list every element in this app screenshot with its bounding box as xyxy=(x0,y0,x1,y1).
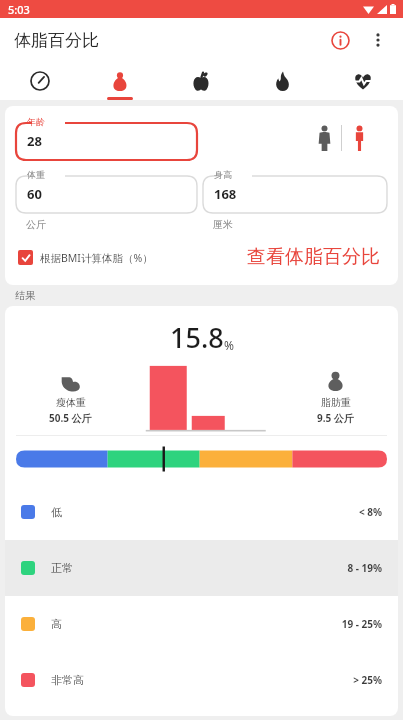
button[interactable]: 正常 xyxy=(5,540,398,596)
button[interactable]: 非常高 xyxy=(5,652,398,708)
staticText: 9.5 公斤 xyxy=(317,411,354,425)
staticText: 体脂百分比 xyxy=(14,30,99,51)
button[interactable]: Heart rate xyxy=(322,62,403,100)
staticText: 5:03 xyxy=(8,2,30,17)
button[interactable]: 查看体脂百分比 xyxy=(243,241,384,273)
staticText: > 25% xyxy=(353,673,382,687)
staticText: 非常高 xyxy=(51,673,84,687)
button[interactable]: 高 xyxy=(5,596,398,652)
button[interactable]: 低 xyxy=(5,484,398,540)
button[interactable]: Female xyxy=(307,121,341,155)
button[interactable]: Dashboard xyxy=(0,62,80,100)
staticText: 根据BMI计算体脂（%） xyxy=(40,251,153,265)
staticText: 体重 xyxy=(27,169,45,180)
staticText: 厘米 xyxy=(213,218,233,231)
button[interactable]: 年龄 xyxy=(16,116,197,160)
button[interactable]: Info xyxy=(321,21,359,59)
staticText: 50.5 公斤 xyxy=(49,411,92,425)
staticText: 身高 xyxy=(214,169,232,180)
button[interactable]: Body fat xyxy=(80,62,160,100)
staticText: 高 xyxy=(51,617,62,631)
staticText: 年龄 xyxy=(27,116,45,127)
staticText: 瘦体重 xyxy=(56,396,86,409)
staticText: 60 xyxy=(27,185,42,203)
staticText: 查看体脂百分比 xyxy=(247,245,380,269)
button[interactable]: Male xyxy=(342,121,376,155)
button[interactable]: 身高 xyxy=(203,169,387,213)
staticText: 公斤 xyxy=(26,218,46,231)
button[interactable]: 体重 xyxy=(16,169,197,213)
button[interactable]: More options xyxy=(359,21,397,59)
staticText: < 8% xyxy=(358,505,382,519)
staticText: 28 xyxy=(27,132,42,150)
button[interactable]: Nutrition xyxy=(160,62,241,100)
staticText: 19 - 25% xyxy=(341,617,382,631)
staticText: 168 xyxy=(214,185,237,203)
staticText: % xyxy=(224,337,234,353)
button[interactable]: Calories xyxy=(241,62,322,100)
button[interactable]: 根据BMI计算体脂（%） xyxy=(18,250,153,265)
staticText: 正常 xyxy=(51,561,73,575)
staticText: 15.8 xyxy=(170,319,224,356)
staticText: 低 xyxy=(51,505,62,519)
staticText: 8 - 19% xyxy=(347,561,382,575)
staticText: 脂肪重 xyxy=(321,396,351,409)
staticText: 结果 xyxy=(15,289,35,302)
